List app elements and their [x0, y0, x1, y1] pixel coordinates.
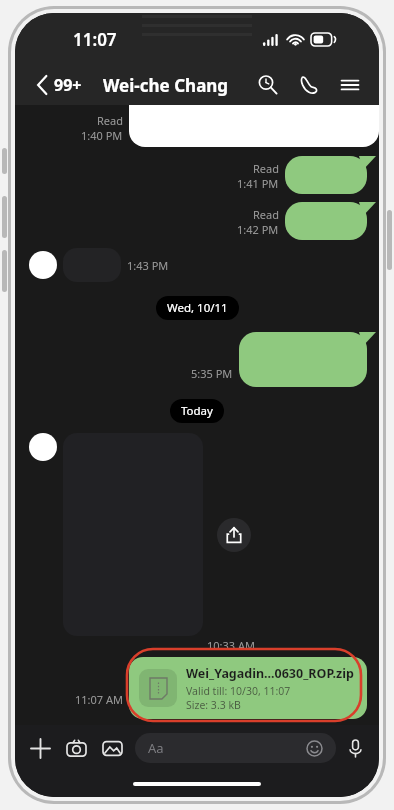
staticText: 1:42 PM	[237, 222, 279, 237]
staticText: 99+	[54, 74, 82, 96]
staticText: Aa	[148, 739, 164, 757]
staticText: Read	[253, 207, 279, 222]
staticText: Read	[97, 113, 123, 128]
staticText: Size: 3.3 kB	[186, 698, 241, 712]
button[interactable]	[129, 105, 379, 147]
staticText: Today	[181, 403, 213, 419]
staticText: 1:41 PM	[237, 176, 279, 191]
button[interactable]: Back, 99+ unread	[35, 70, 84, 100]
staticText: Wei-che Chang	[103, 74, 229, 97]
staticText: 1:43 PM	[127, 258, 169, 273]
button[interactable]: Call	[294, 70, 324, 100]
button[interactable]: Aa	[135, 733, 336, 763]
staticText: 5:35 PM	[191, 366, 233, 381]
staticText: 11:07	[73, 28, 117, 51]
button[interactable]: Wei_Yagadin...0630_ROP.zip	[129, 657, 367, 719]
button[interactable]: Menu	[335, 70, 365, 100]
button[interactable]: Search	[253, 70, 283, 100]
staticText: Valid till: 10/30, 11:07	[186, 684, 291, 698]
button[interactable]: Add	[27, 735, 54, 762]
staticText: 10:33 AM	[207, 638, 255, 653]
button[interactable]: Voice message	[344, 737, 367, 760]
staticText: Wei_Yagadin...0630_ROP.zip	[186, 665, 354, 682]
button[interactable]	[285, 156, 367, 194]
staticText: Wed, 10/11	[167, 300, 228, 316]
button[interactable]: Share	[217, 518, 251, 552]
staticText: 1:40 PM	[81, 128, 123, 143]
staticText: Read	[253, 161, 279, 176]
button[interactable]: Camera	[63, 735, 90, 762]
staticText: 11:07 AM	[75, 692, 123, 707]
button[interactable]	[285, 202, 367, 240]
button[interactable]	[239, 332, 367, 387]
button[interactable]: Gallery	[99, 735, 126, 762]
